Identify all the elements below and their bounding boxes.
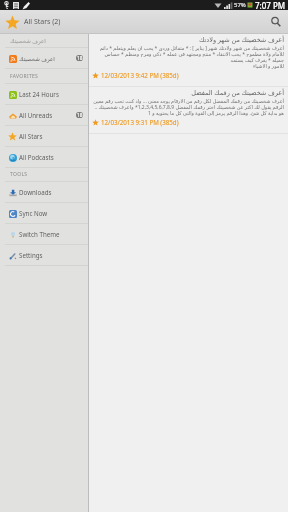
staticText: للامور و الاشياء [92,63,284,69]
staticText: All Stars (2) [24,17,61,27]
staticText: اعرف شخصيتك [19,55,74,62]
staticText: أعرف شخصيتك من رقمك المفضل لكل رقم من ال… [92,98,284,104]
button[interactable]: Settings [0,245,88,265]
staticText: All Unreads [19,111,74,119]
staticText: اعرف شخصيتك [10,37,46,44]
staticText: أعرف شخصيتك من رقمك المفضل [92,88,284,97]
button[interactable]: أعرف شخصيتك من شهر ولادتك [89,34,288,86]
staticText: جميله * يغرف كيف يستمد [92,57,284,63]
button[interactable]: أعرف شخصيتك من رقمك المفضل [89,87,288,133]
staticText: Downloads [19,188,83,196]
button[interactable]: Downloads [0,182,88,202]
staticText: Sync Now [19,209,83,217]
staticText: TOOLS [10,171,28,178]
staticText: 12/03/2013 9:31 PM (385d) [101,118,179,126]
staticText: أعرف شخصيتك من شهر ولادتك [92,35,284,44]
button[interactable]: All Stars [0,126,88,146]
staticText: 7:07 PM [255,0,286,10]
button[interactable]: All Podcasts [0,147,88,167]
button[interactable]: Sync Now [0,203,88,223]
staticText: 1 هو بداية كل شئ. وهذا الرقم يرمز إلى ال… [92,110,284,116]
staticText: أعرف شخصيتك من شهر ولادتك شهر [ يناير ] … [92,45,284,51]
staticText: Last 24 Hours [19,90,83,98]
staticText: 12/03/2013 9:42 PM (385d) [101,71,179,79]
staticText: 57% [234,1,246,9]
staticText: All Podcasts [19,153,83,161]
staticText: 18 [77,55,83,61]
button[interactable]: Switch Theme [0,224,88,244]
staticText: الرقم يقول لك اكثر عن شخصيتك اختر رقمك ا… [92,104,284,110]
staticText: Switch Theme [19,230,83,238]
staticText: FAVORITES [10,73,39,80]
button[interactable]: All Unreads [0,105,88,125]
button[interactable]: Last 24 Hours [0,84,88,104]
staticText: All Stars [19,132,83,140]
staticText: Settings [19,251,83,259]
staticText: 18 [77,112,83,118]
staticText: للأمام ولاة مطموح * يحب الانتقاد * منتج … [92,51,284,57]
button[interactable]: Search [264,10,288,34]
button[interactable]: اعرف شخصيتك [0,48,88,68]
